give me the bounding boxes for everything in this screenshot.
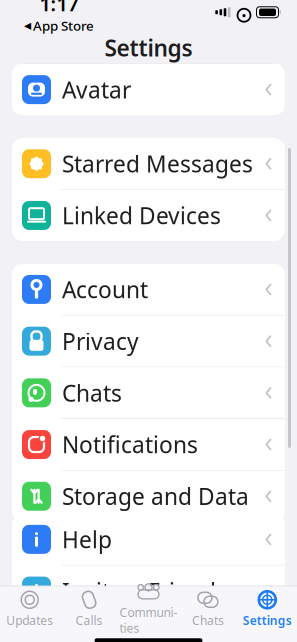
button[interactable]: Avatar bbox=[12, 64, 285, 115]
button[interactable]: Account bbox=[12, 264, 285, 315]
button[interactable]: Invite a Friend bbox=[12, 566, 285, 617]
button[interactable]: Notifications bbox=[12, 419, 285, 470]
staticText: Updates bbox=[6, 612, 53, 628]
staticText: Calls bbox=[76, 612, 103, 628]
staticText: Settings bbox=[104, 33, 192, 63]
staticText: Invite a Friend bbox=[62, 576, 216, 606]
button[interactable]: Help bbox=[12, 514, 285, 565]
button[interactable]: Linked Devices bbox=[12, 190, 285, 241]
staticText: Help bbox=[62, 524, 112, 554]
button[interactable]: Settings bbox=[238, 586, 297, 632]
button[interactable]: Communities bbox=[119, 586, 178, 632]
button[interactable]: Privacy bbox=[12, 316, 285, 367]
button[interactable]: Calls bbox=[59, 586, 119, 632]
staticText: Storage and Data bbox=[62, 481, 249, 511]
button[interactable]: Chats bbox=[12, 367, 285, 418]
staticText: Linked Devices bbox=[62, 200, 221, 230]
staticText: Settings bbox=[243, 612, 292, 628]
staticText: Chats bbox=[192, 612, 224, 628]
staticText: Notifications bbox=[62, 429, 198, 460]
staticText: Account bbox=[62, 274, 148, 304]
button[interactable]: Storage and Data bbox=[12, 471, 285, 522]
staticText: Avatar bbox=[62, 74, 131, 105]
staticText: Communities bbox=[119, 604, 177, 636]
staticText: ◀ bbox=[24, 20, 31, 31]
button[interactable]: Chats bbox=[178, 586, 238, 632]
button[interactable]: Starred Messages bbox=[12, 138, 285, 189]
staticText: Starred Messages bbox=[62, 149, 253, 179]
staticText: App Store bbox=[33, 17, 94, 34]
staticText: Privacy bbox=[62, 326, 139, 356]
button[interactable]: Updates bbox=[0, 586, 59, 632]
staticText: Chats bbox=[62, 378, 122, 408]
staticText: 1:17 bbox=[39, 0, 78, 17]
